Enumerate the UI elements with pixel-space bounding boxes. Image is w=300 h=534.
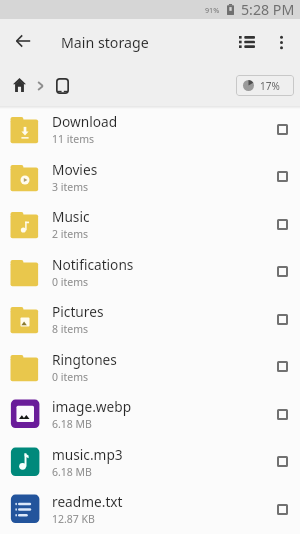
button[interactable]: Select Music bbox=[265, 200, 300, 248]
staticText: Main storage bbox=[61, 33, 149, 52]
staticText: Movies bbox=[52, 160, 98, 179]
staticText: Music bbox=[52, 207, 90, 226]
button[interactable]: Select Movies bbox=[265, 153, 300, 200]
button[interactable]: Select readme.txt bbox=[265, 485, 300, 533]
button[interactable]: 17% bbox=[236, 75, 294, 96]
button[interactable]: Select Pictures bbox=[265, 295, 300, 343]
staticText: Pictures bbox=[52, 302, 104, 321]
button[interactable]: Pictures bbox=[0, 295, 300, 343]
button[interactable]: Back bbox=[1, 19, 45, 63]
button[interactable]: Music bbox=[0, 200, 300, 248]
staticText: 3 items bbox=[52, 180, 89, 194]
button[interactable]: Select Notifications bbox=[265, 248, 300, 295]
button[interactable]: Home bbox=[7, 66, 31, 106]
staticText: image.webp bbox=[52, 397, 132, 416]
staticText: 6.18 MB bbox=[52, 465, 92, 479]
button[interactable]: Movies bbox=[0, 153, 300, 200]
staticText: Notifications bbox=[52, 255, 134, 274]
staticText: 11 items bbox=[52, 132, 95, 146]
staticText: 6.18 MB bbox=[52, 417, 92, 431]
staticText: Download bbox=[52, 112, 118, 131]
staticText: 8 items bbox=[52, 322, 89, 336]
button[interactable]: Select Download bbox=[265, 105, 300, 153]
staticText: 5:28 PM bbox=[241, 0, 295, 19]
staticText: music.mp3 bbox=[52, 445, 123, 464]
button[interactable]: List view bbox=[221, 19, 258, 65]
staticText: 0 items bbox=[52, 275, 89, 289]
button[interactable]: Select music.mp3 bbox=[265, 438, 300, 485]
button[interactable]: music.mp3 bbox=[0, 438, 300, 485]
button[interactable]: Select image.webp bbox=[265, 390, 300, 438]
staticText: 12.87 KB bbox=[52, 512, 95, 526]
button[interactable]: readme.txt bbox=[0, 485, 300, 533]
staticText: readme.txt bbox=[52, 492, 123, 511]
button[interactable]: Notifications bbox=[0, 248, 300, 295]
staticText: 2 items bbox=[52, 227, 89, 241]
button[interactable]: More options bbox=[258, 19, 300, 65]
button[interactable]: Ringtones bbox=[0, 343, 300, 390]
staticText: 17% bbox=[260, 79, 280, 93]
button[interactable]: image.webp bbox=[0, 390, 300, 438]
staticText: 91% bbox=[205, 5, 220, 15]
button[interactable]: Download bbox=[0, 105, 300, 153]
staticText: 0 items bbox=[52, 370, 89, 384]
button[interactable]: Device storage bbox=[50, 66, 74, 106]
button[interactable]: Select Ringtones bbox=[265, 343, 300, 390]
staticText: Ringtones bbox=[52, 350, 117, 369]
